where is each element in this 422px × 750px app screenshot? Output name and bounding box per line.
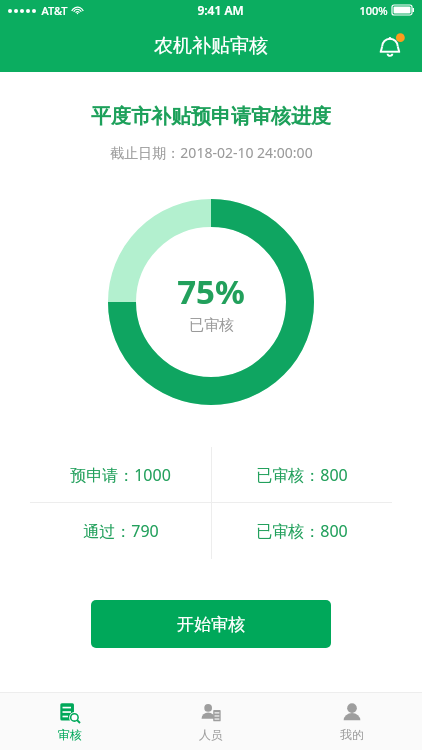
button[interactable]: 审核	[0, 693, 140, 750]
button[interactable]: 我的	[281, 693, 422, 750]
staticText: 已审核：800	[256, 520, 348, 542]
button[interactable]: 人员	[140, 693, 281, 750]
staticText: 开始审核	[177, 614, 245, 635]
button[interactable]: 通过：790	[30, 503, 211, 559]
staticText: 预申请：1000	[70, 464, 171, 486]
staticText: 农机补贴审核	[154, 34, 268, 58]
staticText: 100%	[359, 3, 388, 18]
staticText: 我的	[340, 727, 364, 742]
button[interactable]: 开始审核	[91, 600, 331, 648]
staticText: 9:41 AM	[197, 2, 244, 18]
staticText: 人员	[199, 727, 223, 742]
button[interactable]: 已审核：800	[211, 447, 392, 502]
button[interactable]: 预申请：1000	[30, 447, 211, 502]
staticText: 审核	[58, 727, 82, 742]
staticText: 通过：790	[83, 520, 159, 542]
staticText: 平度市补贴预申请审核进度	[91, 104, 331, 129]
staticText: 已审核：800	[256, 464, 348, 486]
staticText: 截止日期：2018-02-10 24:00:00	[110, 143, 313, 162]
button[interactable]: Notifications	[374, 29, 408, 63]
staticText: 已审核	[189, 316, 234, 335]
button[interactable]: 已审核：800	[211, 503, 392, 559]
staticText: AT&T	[41, 3, 68, 18]
staticText: 75%	[177, 269, 245, 314]
